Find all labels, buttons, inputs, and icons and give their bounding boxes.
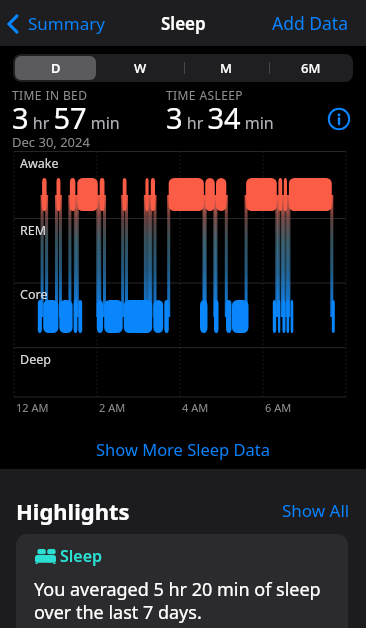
staticText: Show More Sleep Data	[96, 438, 271, 460]
button[interactable]: Sleep	[16, 534, 348, 628]
staticText: Dec 30, 2024	[12, 133, 90, 151]
staticText: 4 AM	[182, 400, 209, 415]
button[interactable]: Show All	[282, 499, 350, 522]
staticText: REM	[20, 222, 47, 239]
staticText: Highlights	[16, 496, 130, 526]
staticText: D	[51, 59, 61, 77]
staticText: TIME IN BED	[12, 87, 88, 103]
staticText: Sleep	[60, 545, 103, 567]
staticText: Summary	[28, 12, 105, 35]
button[interactable]: D	[15, 56, 96, 80]
staticText: 6 AM	[265, 400, 292, 415]
staticText: TIME ASLEEP	[166, 87, 243, 103]
button[interactable]: Add Data	[272, 11, 348, 35]
button[interactable]: Show More Sleep Data	[96, 438, 271, 460]
staticText: 2 AM	[99, 400, 126, 415]
staticText: Show All	[282, 499, 350, 522]
staticText: Deep	[20, 351, 51, 368]
staticText: 6M	[301, 59, 321, 77]
staticText: Add Data	[272, 11, 348, 35]
staticText: 12 AM	[16, 400, 49, 415]
button[interactable]: M	[185, 56, 266, 80]
button[interactable]	[328, 108, 350, 130]
button[interactable]: W	[100, 56, 181, 80]
button[interactable]: Summary	[6, 12, 105, 35]
staticText: You averaged 5 hr 20 min of sleep over t…	[34, 577, 321, 624]
staticText: Sleep	[161, 12, 206, 35]
staticText: M	[220, 59, 232, 77]
staticText: W	[134, 59, 147, 77]
button[interactable]: 6M	[270, 56, 351, 80]
staticText: Core	[20, 286, 48, 303]
staticText: 3 hr 34 min	[166, 98, 274, 137]
staticText: Awake	[20, 155, 59, 172]
staticText: 3 hr 57 min	[12, 98, 120, 137]
